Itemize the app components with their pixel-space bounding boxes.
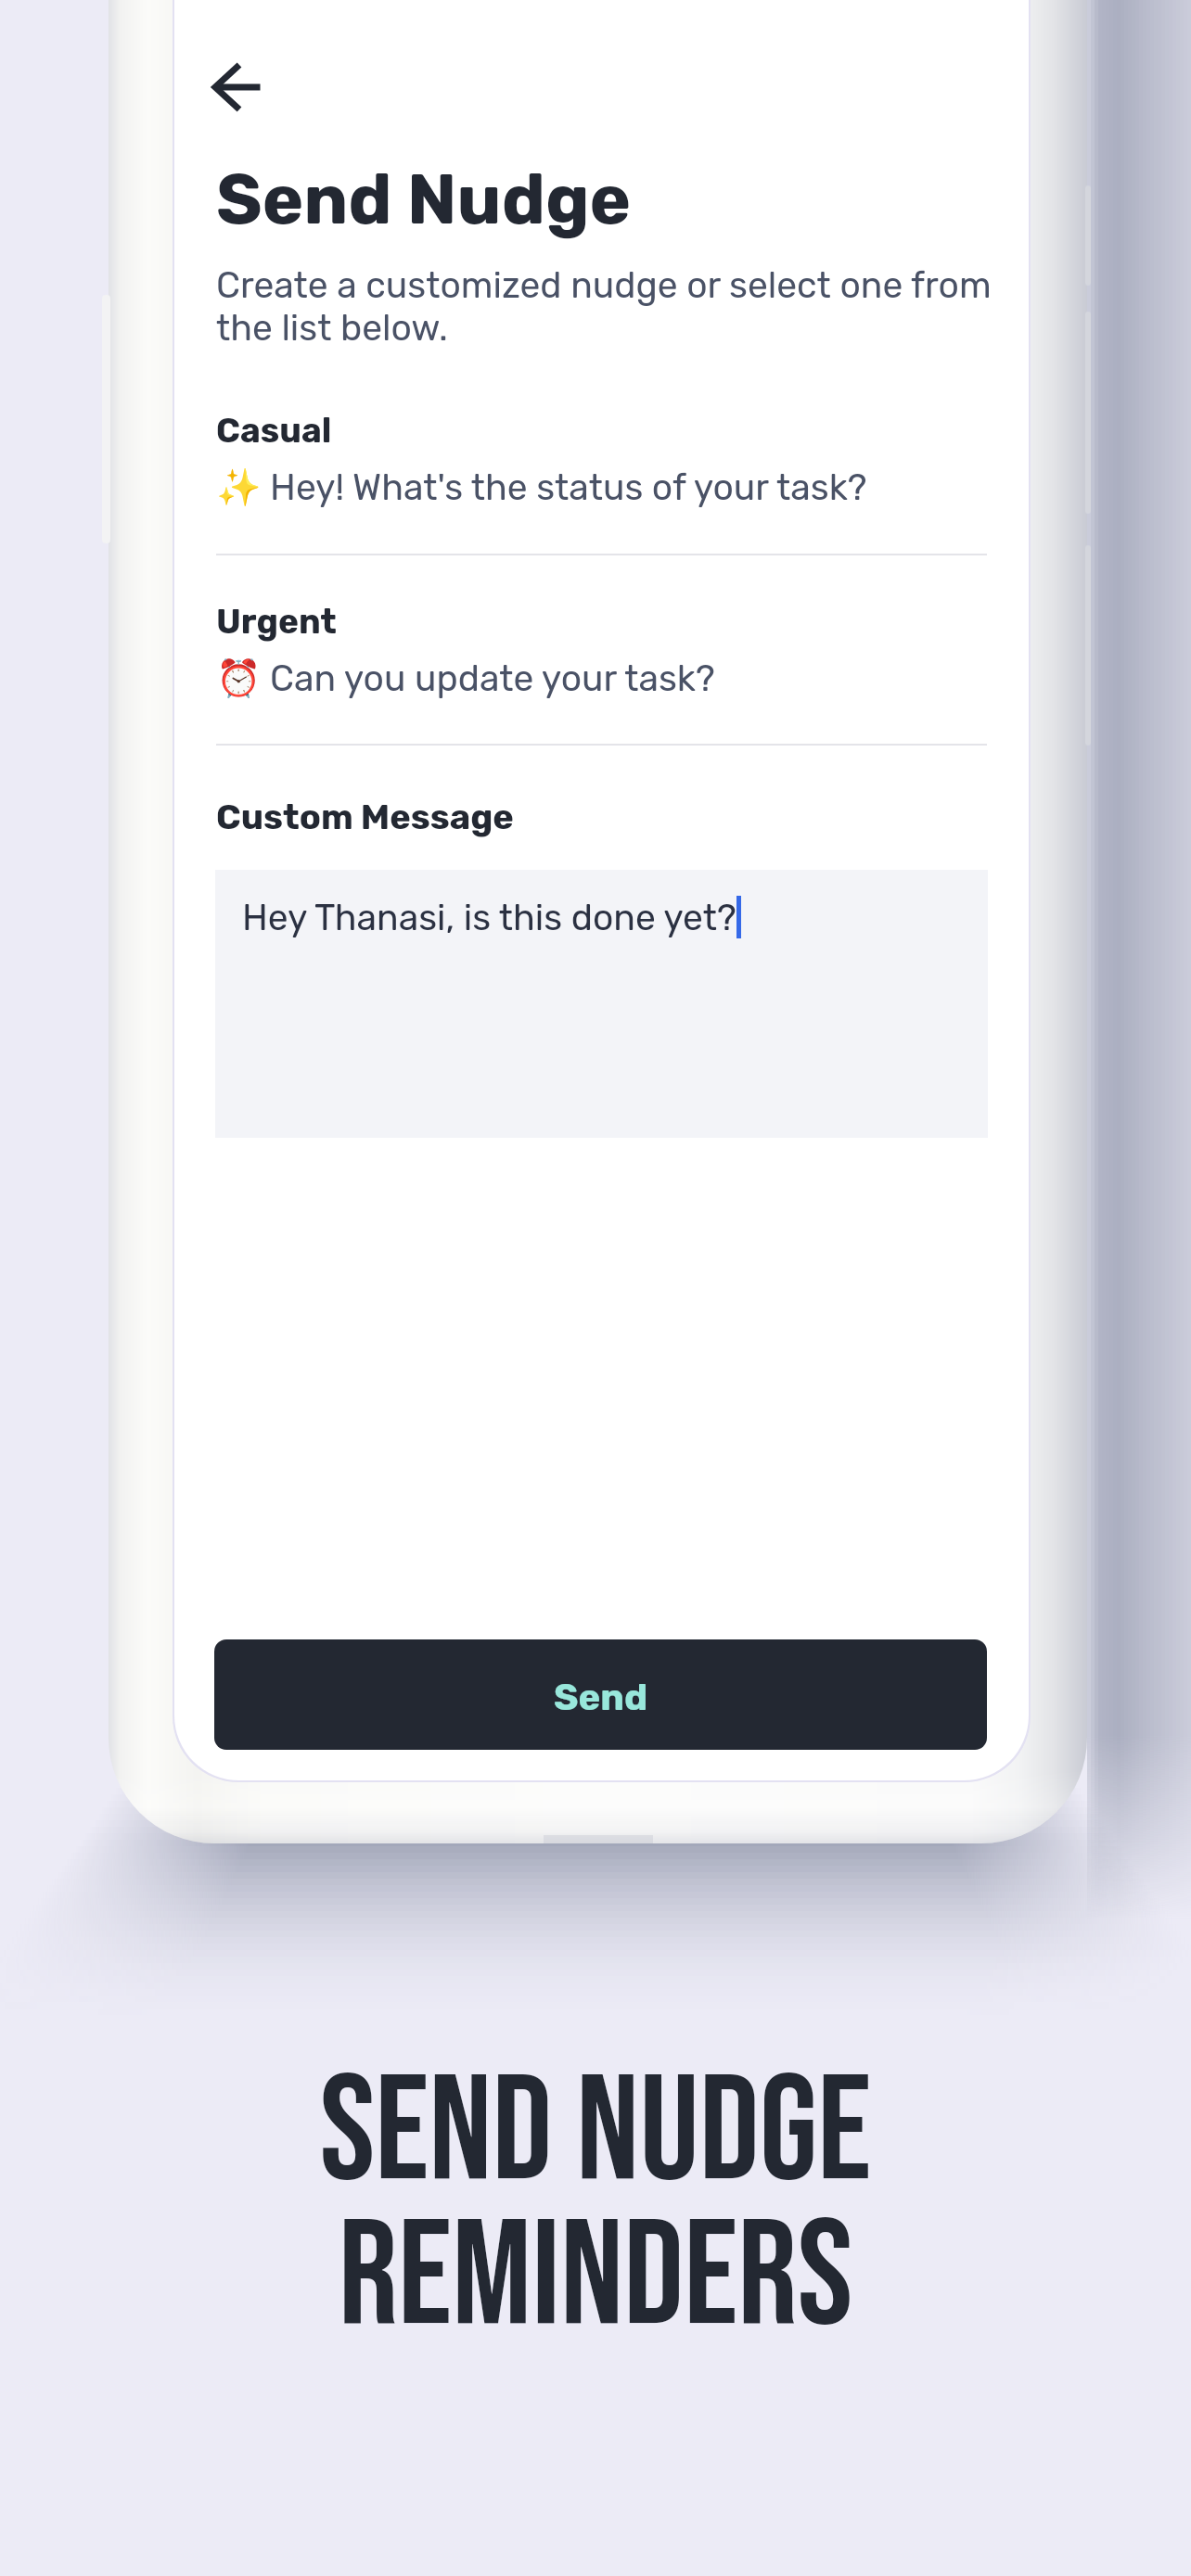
staticText: Send Nudge xyxy=(216,159,632,241)
button[interactable]: Urgent xyxy=(203,597,1000,715)
staticText: SEND NUDGE REMINDERS xyxy=(0,2045,1191,2367)
staticText: Send xyxy=(554,1676,648,1719)
staticText: Hey Thanasi, is this done yet? xyxy=(242,897,736,939)
button[interactable]: Casual xyxy=(203,406,1000,524)
staticText: Urgent xyxy=(216,601,337,642)
button[interactable]: Send xyxy=(214,1639,987,1750)
staticText: Casual xyxy=(216,410,332,451)
staticText: Create a customized nudge or select one … xyxy=(216,264,1000,349)
staticText: ✨ Hey! What's the status of your task? xyxy=(216,466,867,509)
button[interactable]: Back xyxy=(193,43,282,132)
staticText: Custom Message xyxy=(216,796,514,837)
staticText: ⏰ Can you update your task? xyxy=(216,657,715,700)
button[interactable]: Hey Thanasi, is this done yet? xyxy=(215,870,988,1138)
